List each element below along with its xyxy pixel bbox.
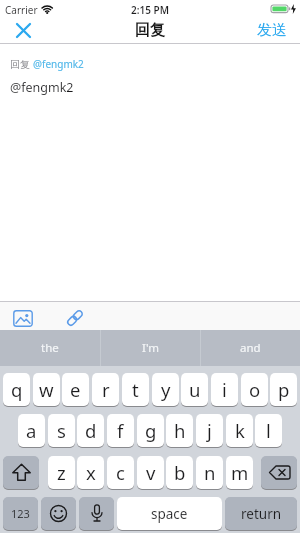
staticText: and bbox=[240, 340, 261, 356]
button[interactable] bbox=[41, 497, 76, 531]
staticText: y bbox=[161, 377, 171, 402]
staticText: f bbox=[117, 418, 124, 443]
button[interactable] bbox=[261, 456, 297, 490]
button[interactable] bbox=[60, 305, 90, 331]
button[interactable]: o bbox=[241, 373, 268, 407]
staticText: 回复 bbox=[135, 21, 165, 40]
button[interactable]: q bbox=[3, 373, 30, 407]
button[interactable]: j bbox=[196, 414, 223, 448]
staticText: 123 bbox=[11, 506, 30, 521]
staticText: Carrier bbox=[5, 3, 38, 17]
button[interactable]: r bbox=[92, 373, 119, 407]
button[interactable]: y bbox=[152, 373, 179, 407]
staticText: j bbox=[207, 418, 212, 443]
button[interactable] bbox=[79, 497, 114, 531]
staticText: h bbox=[174, 418, 186, 443]
staticText: 发送 bbox=[257, 21, 287, 40]
staticText: @fengmk2 bbox=[33, 57, 84, 71]
button[interactable]: and bbox=[200, 330, 300, 366]
button[interactable]: s bbox=[48, 414, 75, 448]
staticText: e bbox=[70, 377, 81, 402]
button[interactable]: t bbox=[122, 373, 149, 407]
button[interactable]: e bbox=[62, 373, 89, 407]
staticText: q bbox=[11, 377, 23, 402]
staticText: g bbox=[145, 418, 157, 443]
button[interactable]: u bbox=[181, 373, 208, 407]
staticText: s bbox=[57, 418, 66, 443]
button[interactable]: k bbox=[226, 414, 253, 448]
staticText: 回复 bbox=[10, 57, 33, 71]
button[interactable]: n bbox=[196, 456, 223, 490]
staticText: m bbox=[231, 460, 249, 485]
button[interactable]: the bbox=[0, 330, 100, 366]
button[interactable] bbox=[8, 305, 38, 331]
button[interactable]: x bbox=[77, 456, 104, 490]
staticText: return bbox=[241, 505, 282, 523]
staticText: l bbox=[266, 418, 271, 443]
staticText: v bbox=[146, 460, 156, 485]
button[interactable]: g bbox=[137, 414, 164, 448]
staticText: u bbox=[189, 377, 201, 402]
staticText: w bbox=[39, 377, 54, 402]
button[interactable]: m bbox=[226, 456, 253, 490]
staticText: I'm bbox=[142, 340, 159, 356]
staticText: z bbox=[57, 460, 66, 485]
staticText: c bbox=[116, 460, 125, 485]
staticText: the bbox=[41, 340, 59, 356]
staticText: b bbox=[174, 460, 186, 485]
button[interactable]: z bbox=[48, 456, 75, 490]
staticText: space bbox=[151, 505, 188, 523]
button[interactable]: i bbox=[211, 373, 238, 407]
button[interactable]: v bbox=[137, 456, 164, 490]
staticText: p bbox=[278, 377, 290, 402]
button[interactable]: return bbox=[225, 497, 297, 531]
button[interactable]: c bbox=[107, 456, 134, 490]
staticText: t bbox=[132, 377, 139, 402]
button[interactable]: d bbox=[77, 414, 104, 448]
button[interactable]: 发送 bbox=[257, 19, 287, 41]
button[interactable]: p bbox=[270, 373, 297, 407]
staticText: 2:15 PM bbox=[131, 3, 169, 17]
button[interactable]: l bbox=[255, 414, 282, 448]
staticText: i bbox=[222, 377, 227, 402]
button[interactable]: I'm bbox=[100, 330, 200, 366]
button[interactable]: a bbox=[18, 414, 45, 448]
button[interactable]: 123 bbox=[3, 497, 38, 531]
staticText: o bbox=[249, 377, 261, 402]
staticText: d bbox=[85, 418, 97, 443]
staticText: @fengmk2 bbox=[10, 79, 74, 96]
button[interactable] bbox=[8, 19, 38, 41]
staticText: a bbox=[26, 418, 37, 443]
staticText: x bbox=[86, 460, 96, 485]
button[interactable]: space bbox=[117, 497, 222, 531]
button[interactable]: f bbox=[107, 414, 134, 448]
button[interactable]: h bbox=[166, 414, 193, 448]
staticText: n bbox=[204, 460, 216, 485]
button[interactable]: w bbox=[33, 373, 60, 407]
staticText: r bbox=[102, 377, 110, 402]
button[interactable]: b bbox=[166, 456, 193, 490]
staticText: k bbox=[235, 418, 245, 443]
button[interactable] bbox=[3, 456, 39, 490]
